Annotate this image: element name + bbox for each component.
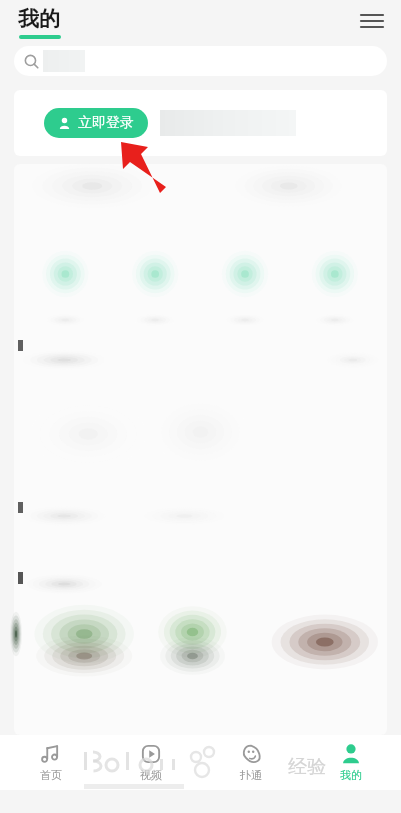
staticText: 首页 (40, 768, 62, 782)
button[interactable]: Search (14, 46, 387, 76)
staticText: 我的 (18, 6, 60, 32)
button[interactable]: 立即登录 (44, 108, 148, 138)
button[interactable]: 视频 (101, 735, 201, 790)
button[interactable]: 我的 (301, 735, 401, 790)
staticText: 经验 (288, 755, 326, 779)
staticText: 我的 (340, 768, 362, 782)
staticText: 视频 (140, 768, 162, 782)
button[interactable]: 首页 (0, 735, 101, 790)
staticText: 立即登录 (78, 114, 134, 132)
staticText: 扑通 (240, 768, 262, 782)
button[interactable]: Menu (355, 4, 389, 38)
button[interactable]: 扑通 (201, 735, 301, 790)
